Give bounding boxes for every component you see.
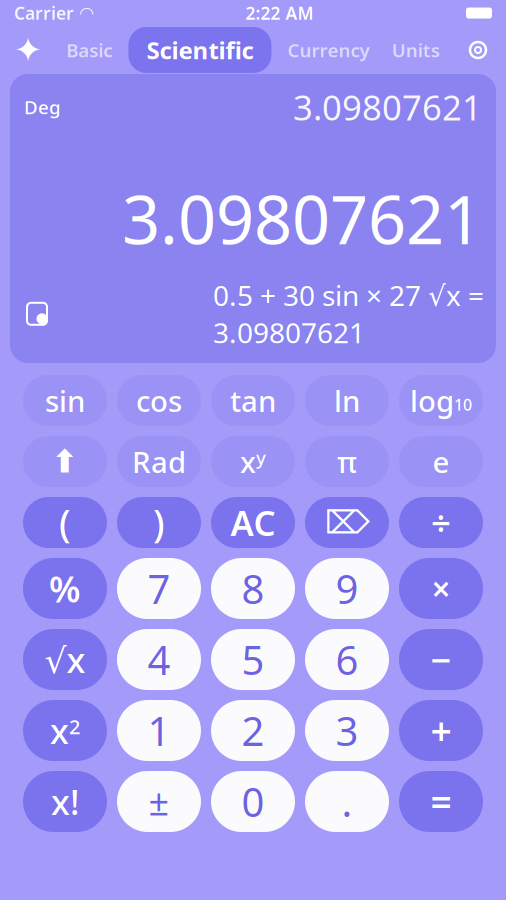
button[interactable]: × (399, 558, 483, 619)
button[interactable]: π (305, 436, 389, 487)
staticText: 9 (335, 562, 358, 615)
button[interactable]: Magic (6, 28, 50, 72)
staticText: x! (51, 778, 79, 824)
button[interactable]: 3 (305, 700, 389, 761)
staticText: 6 (335, 633, 358, 686)
staticText: Currency (288, 38, 370, 62)
staticText: Basic (66, 38, 112, 62)
staticText: ) (153, 498, 165, 547)
button[interactable]: log (399, 375, 483, 426)
button[interactable]: ( (23, 497, 107, 548)
button[interactable]: ln (305, 375, 389, 426)
staticText: Scientific (146, 34, 253, 66)
button[interactable]: 1 (117, 700, 201, 761)
staticText: 0 (241, 775, 264, 828)
button[interactable]: 8 (211, 558, 295, 619)
button[interactable]: e (399, 436, 483, 487)
button[interactable]: Delete (305, 497, 389, 548)
button[interactable]: 6 (305, 629, 389, 690)
staticText: ✦ (13, 30, 42, 70)
button[interactable]: Currency (282, 34, 376, 66)
staticText: e (432, 442, 449, 481)
button[interactable]: . (305, 771, 389, 832)
button[interactable]: ) (117, 497, 201, 548)
staticText: % (49, 565, 81, 612)
button[interactable]: 5 (211, 629, 295, 690)
staticText: ⬆ (51, 443, 78, 480)
button[interactable]: AC (211, 497, 295, 548)
staticText: AC (230, 499, 275, 545)
staticText: ÷ (431, 499, 451, 545)
staticText: Units (392, 38, 440, 62)
staticText: − (430, 636, 451, 683)
staticText: 2 (241, 704, 264, 757)
button[interactable]: = (399, 771, 483, 832)
button[interactable]: 9 (305, 558, 389, 619)
button[interactable]: 2 (211, 700, 295, 761)
button[interactable]: 7 (117, 558, 201, 619)
button[interactable]: Scientific (128, 27, 271, 73)
button[interactable]: tan (211, 375, 295, 426)
button[interactable]: 0 (211, 771, 295, 832)
staticText: Rad (132, 442, 186, 481)
staticText: 10 (454, 394, 472, 415)
staticText: 3.09807621 (293, 84, 482, 130)
button[interactable]: + (399, 700, 483, 761)
staticText: 0.5 + 30 sin × 27 √x = 3.09807621 (213, 277, 484, 351)
button[interactable]: x (211, 436, 295, 487)
staticText: . (341, 775, 352, 828)
staticText: cos (136, 381, 182, 420)
button[interactable]: ÷ (399, 497, 483, 548)
button[interactable]: Basic (60, 34, 118, 66)
staticText: 4 (147, 633, 170, 686)
staticText: ( (59, 498, 71, 547)
staticText: √x (44, 636, 85, 682)
staticText: ⌦ (324, 504, 369, 541)
button[interactable]: x (23, 700, 107, 761)
button[interactable]: − (399, 629, 483, 690)
staticText: x (50, 707, 69, 753)
staticText: 2 (69, 713, 80, 740)
staticText: log (410, 381, 454, 420)
staticText: 3.09807621 (122, 174, 482, 263)
button[interactable]: Units (386, 34, 446, 66)
button[interactable]: % (23, 558, 107, 619)
button[interactable]: History (22, 299, 52, 329)
button[interactable]: √x (23, 629, 107, 690)
staticText: Carrier (14, 1, 74, 24)
staticText: 1 (147, 704, 170, 757)
staticText: ln (334, 381, 360, 420)
staticText: ± (148, 778, 169, 825)
button[interactable]: x! (23, 771, 107, 832)
button[interactable]: ± (117, 771, 201, 832)
staticText: = (430, 777, 451, 826)
staticText: 5 (241, 633, 264, 686)
staticText: × (431, 566, 450, 611)
staticText: sin (45, 381, 85, 420)
staticText: + (430, 706, 451, 755)
staticText: 7 (147, 562, 170, 615)
staticText: 3 (335, 704, 358, 757)
button[interactable]: Rad (117, 436, 201, 487)
button[interactable]: cos (117, 375, 201, 426)
staticText: 2:22 AM (245, 1, 313, 24)
staticText: ◠ (80, 3, 93, 23)
staticText: tan (230, 381, 276, 420)
staticText: 8 (241, 562, 264, 615)
staticText: Deg (24, 95, 61, 119)
button[interactable]: sin (23, 375, 107, 426)
staticText: π (337, 442, 357, 481)
staticText: y (256, 445, 266, 470)
staticText: x (240, 442, 256, 481)
button[interactable]: 4 (117, 629, 201, 690)
button[interactable]: Settings (456, 28, 500, 72)
button[interactable]: Shift (23, 436, 107, 487)
